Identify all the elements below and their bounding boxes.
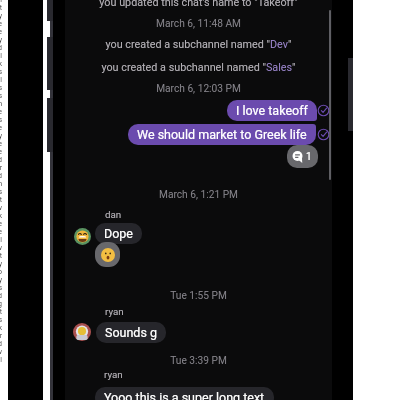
staticText: and always will	[0, 356, 2, 364]
button[interactable]: We should market to Greek life	[128, 124, 316, 145]
staticText: products daily	[0, 132, 2, 140]
staticText: around the world	[0, 292, 2, 300]
staticText: who builds	[0, 116, 2, 124]
staticText: anywhere at all	[0, 76, 2, 84]
staticText: just good work	[0, 324, 2, 332]
staticText: Dope	[104, 226, 133, 241]
button[interactable]: Message delivered	[317, 104, 330, 117]
staticText: engineering team	[0, 0, 2, 4]
staticText: of the quarter	[0, 164, 2, 172]
staticText: for all users	[0, 188, 2, 196]
button[interactable]: Reaction	[95, 242, 120, 267]
staticText: until the end	[0, 156, 2, 164]
staticText: March 6, 11:48 AM	[65, 18, 332, 30]
staticText: without any fuss	[0, 316, 2, 324]
staticText: you created a subchannel named "Sales"	[65, 61, 332, 74]
staticText: night as well	[0, 52, 2, 60]
button[interactable]: Message delivered	[317, 128, 330, 141]
staticText: March 6, 1:21 PM	[65, 189, 332, 201]
button[interactable]: ryan avatar	[73, 323, 91, 341]
staticText: company, every	[0, 36, 2, 44]
staticText: building more	[0, 220, 2, 228]
staticText: great software	[0, 124, 2, 132]
staticText: and far beyond	[0, 172, 2, 180]
staticText: at any scale	[0, 140, 2, 148]
button[interactable]: Yooo this is a super long text	[95, 387, 274, 400]
staticText: never stalls	[0, 68, 2, 76]
staticText: and each night	[0, 308, 2, 316]
staticText: you created a subchannel named "Dev"	[65, 38, 332, 51]
staticText: and velocity too	[0, 268, 2, 276]
staticText: than ever before	[0, 228, 2, 236]
staticText: every morning	[0, 300, 2, 308]
staticText: done together	[0, 332, 2, 340]
staticText: focused crew	[0, 244, 2, 252]
staticText: and next week	[0, 212, 2, 220]
staticText: and time zones	[0, 92, 2, 100]
staticText: March 6, 12:03 PM	[65, 83, 332, 95]
staticText: Yooo this is a super long text	[104, 390, 265, 400]
button[interactable]: I love takeoff	[227, 100, 317, 121]
staticText: We should market to Greek life	[137, 127, 307, 142]
staticText: a better way	[0, 12, 2, 20]
staticText: of the rest now	[0, 348, 2, 356]
staticText: that horizon	[0, 180, 2, 188]
staticText: you updated this chat's name to "Takeoff…	[65, 0, 332, 9]
staticText: 1	[306, 151, 312, 163]
staticText: Tue 3:39 PM	[65, 355, 332, 367]
staticText: about quality	[0, 260, 2, 268]
staticText: that cares a lot	[0, 252, 2, 260]
staticText: dan	[105, 209, 122, 220]
staticText: to collaborate	[0, 20, 2, 28]
button[interactable]: Sounds g	[96, 322, 166, 343]
button[interactable]: 1	[287, 145, 318, 168]
staticText: ryan	[104, 369, 123, 380]
staticText: across teams	[0, 84, 2, 92]
staticText: single day and	[0, 44, 2, 52]
staticText: to happy users	[0, 284, 2, 292]
staticText: from day one	[0, 148, 2, 156]
staticText: Sounds g	[105, 325, 157, 340]
staticText: today tomorrow	[0, 204, 2, 212]
staticText: shipping daily	[0, 276, 2, 284]
button[interactable]: dan avatar	[74, 228, 91, 245]
staticText: shipping fast	[0, 4, 2, 12]
staticText: ryan	[105, 306, 124, 317]
staticText: one step ahead	[0, 340, 2, 348]
staticText: with a small	[0, 236, 2, 244]
staticText: without friction	[0, 100, 2, 108]
button[interactable]: Dope	[95, 223, 142, 244]
staticText: on the planet	[0, 196, 2, 204]
staticText: I love takeoff	[236, 103, 308, 118]
staticText: so the work	[0, 60, 2, 68]
staticText: with your whole	[0, 28, 2, 36]
staticText: for everyone	[0, 108, 2, 116]
staticText: Tue 1:55 PM	[65, 290, 332, 302]
